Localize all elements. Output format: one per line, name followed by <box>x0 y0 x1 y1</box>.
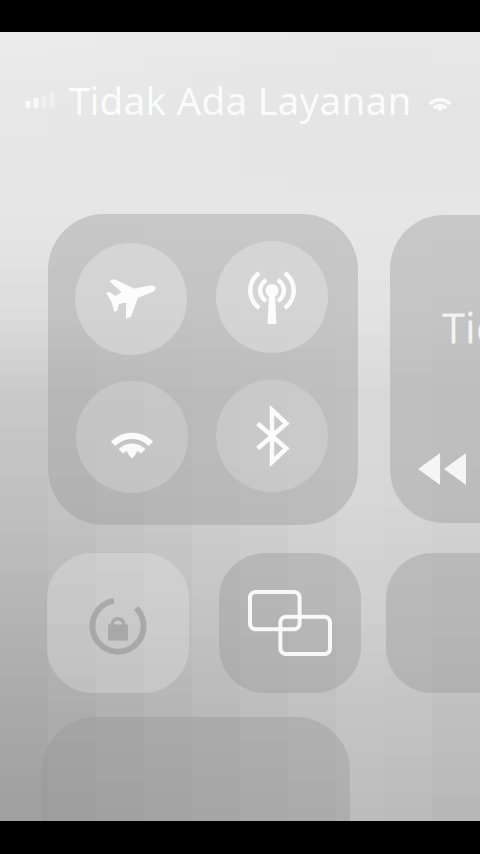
staticText: Tid <box>442 300 480 355</box>
button[interactable]: Screen Mirroring <box>219 553 361 693</box>
button[interactable] <box>75 243 187 355</box>
button[interactable] <box>76 381 188 493</box>
button[interactable]: Focus <box>386 553 480 693</box>
button[interactable] <box>216 380 328 492</box>
button[interactable] <box>216 241 328 353</box>
button[interactable]: Rotation Lock <box>47 553 189 693</box>
staticText: Tidak Ada Layanan <box>68 74 411 126</box>
